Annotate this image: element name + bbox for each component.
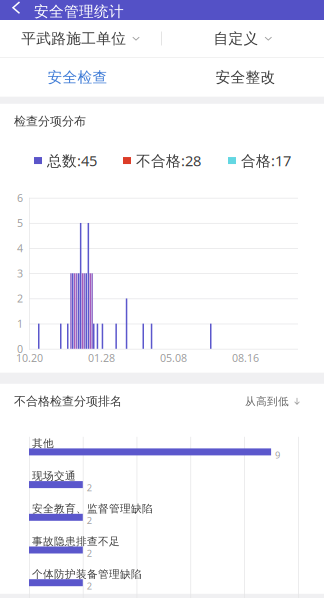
staticText: 2	[87, 514, 92, 527]
button[interactable]: 安全整改	[161, 58, 324, 97]
staticText: 不合格:28	[136, 151, 201, 170]
staticText: 5	[17, 216, 23, 230]
staticText: 安全管理统计	[34, 2, 124, 20]
staticText: 现场交通	[32, 469, 76, 483]
staticText: 总数:45	[47, 151, 97, 170]
staticText: 合格:17	[241, 151, 291, 170]
staticText: 检查分项分布	[14, 114, 86, 128]
staticText: 个体防护装备管理缺陷	[32, 568, 142, 581]
staticText: 1	[17, 317, 23, 331]
staticText: 不合格检查分项排名	[14, 394, 122, 408]
button[interactable]: 从高到低	[239, 390, 306, 413]
staticText: 6	[17, 191, 23, 205]
button[interactable]: 返回	[0, 0, 32, 20]
button[interactable]: 自定义	[162, 20, 324, 57]
staticText: 10.20	[16, 351, 43, 365]
staticText: 安全教育、监督管理缺陷	[32, 502, 153, 515]
staticText: 安全整改	[215, 68, 275, 86]
staticText: 其他	[32, 437, 54, 450]
staticText: 2	[87, 547, 92, 559]
staticText: 05.08	[160, 351, 187, 365]
staticText: 平武路施工单位	[21, 29, 126, 47]
staticText: 2	[87, 580, 92, 592]
staticText: 4	[17, 241, 23, 255]
staticText: 9	[275, 449, 280, 461]
staticText: 0	[17, 342, 23, 356]
staticText: 安全检查	[47, 68, 107, 86]
staticText: 08.16	[232, 351, 259, 365]
staticText: 2	[17, 291, 23, 306]
staticText: 01.28	[88, 351, 115, 365]
staticText: 从高到低	[245, 395, 289, 408]
staticText: 2	[87, 481, 92, 494]
staticText: 事故隐患排查不足	[32, 535, 120, 548]
button[interactable]: 安全检查	[0, 58, 155, 97]
staticText: 3	[17, 266, 23, 280]
staticText: 自定义	[214, 29, 259, 47]
button[interactable]: 平武路施工单位	[0, 20, 161, 57]
